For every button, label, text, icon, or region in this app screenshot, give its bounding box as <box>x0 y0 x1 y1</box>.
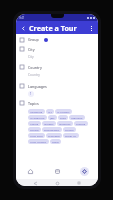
button[interactable]: Craft Beer <box>46 133 62 138</box>
button[interactable]: Markets <box>42 121 56 126</box>
button[interactable]: Local Food <box>28 133 45 138</box>
staticText: Food <box>60 116 66 119</box>
staticText: Jazz <box>50 116 55 119</box>
button[interactable]: Group <box>20 37 94 42</box>
button[interactable]: Jazz <box>48 115 57 120</box>
button[interactable]: Literature <box>69 115 85 120</box>
staticText: Culture <box>65 128 74 131</box>
button[interactable]: 1 <box>28 91 34 97</box>
button[interactable]: Tours <box>44 164 71 179</box>
button[interactable]: Other <box>50 139 61 144</box>
button[interactable]: Back <box>19 24 27 32</box>
staticText: Other <box>52 140 59 143</box>
staticText: Literature <box>71 116 83 119</box>
button[interactable]: Science <box>28 127 41 132</box>
staticText: City <box>28 47 35 52</box>
staticText: Create a Tour <box>29 23 77 33</box>
staticText: Group <box>28 37 39 42</box>
button[interactable]: Recents <box>76 180 82 186</box>
button[interactable]: More options <box>87 24 95 32</box>
staticText: 9:41 <box>19 16 25 20</box>
staticText: Local Food <box>30 134 43 137</box>
button[interactable]: Culture <box>63 127 76 132</box>
button[interactable]: Home <box>54 180 60 186</box>
button[interactable]: Back <box>32 180 38 186</box>
staticText: Markets <box>44 122 54 125</box>
staticText: 1 <box>30 92 32 96</box>
button[interactable]: Settings <box>71 164 98 179</box>
staticText: City <box>28 55 34 59</box>
staticText: Languages <box>28 84 47 89</box>
button[interactable]: Adventure <box>28 109 45 114</box>
staticText: Theatre <box>76 122 86 125</box>
button[interactable]: Photography <box>42 127 62 132</box>
staticText: Museums <box>59 122 71 125</box>
staticText: Country <box>28 73 40 77</box>
staticText: Craft Beer <box>48 134 60 137</box>
staticText: Art <box>48 110 52 113</box>
button[interactable]: Home <box>16 164 44 179</box>
button[interactable]: Street Art <box>63 133 79 138</box>
staticText: Photography <box>44 128 60 131</box>
button[interactable]: Food <box>58 115 68 120</box>
button[interactable]: City <box>20 47 94 59</box>
staticText: Topics <box>28 101 39 106</box>
button[interactable]: Museums <box>57 121 73 126</box>
staticText: Street Art <box>65 134 77 137</box>
staticText: Science <box>30 128 39 131</box>
staticText: Architecture <box>30 116 45 119</box>
button[interactable]: Nature <box>28 121 41 126</box>
button[interactable]: Theatre <box>74 121 88 126</box>
button[interactable]: Art History <box>55 109 72 114</box>
button[interactable]: Architecture <box>28 115 47 120</box>
staticText: Art History <box>57 110 70 113</box>
button[interactable]: Local Artisans <box>28 139 49 144</box>
button[interactable]: Country <box>20 65 94 77</box>
staticText: Nature <box>30 122 39 125</box>
staticText: Country <box>28 65 42 70</box>
staticText: Adventure <box>30 110 43 113</box>
staticText: Local Artisans <box>30 140 47 143</box>
button[interactable]: Art <box>46 109 54 114</box>
